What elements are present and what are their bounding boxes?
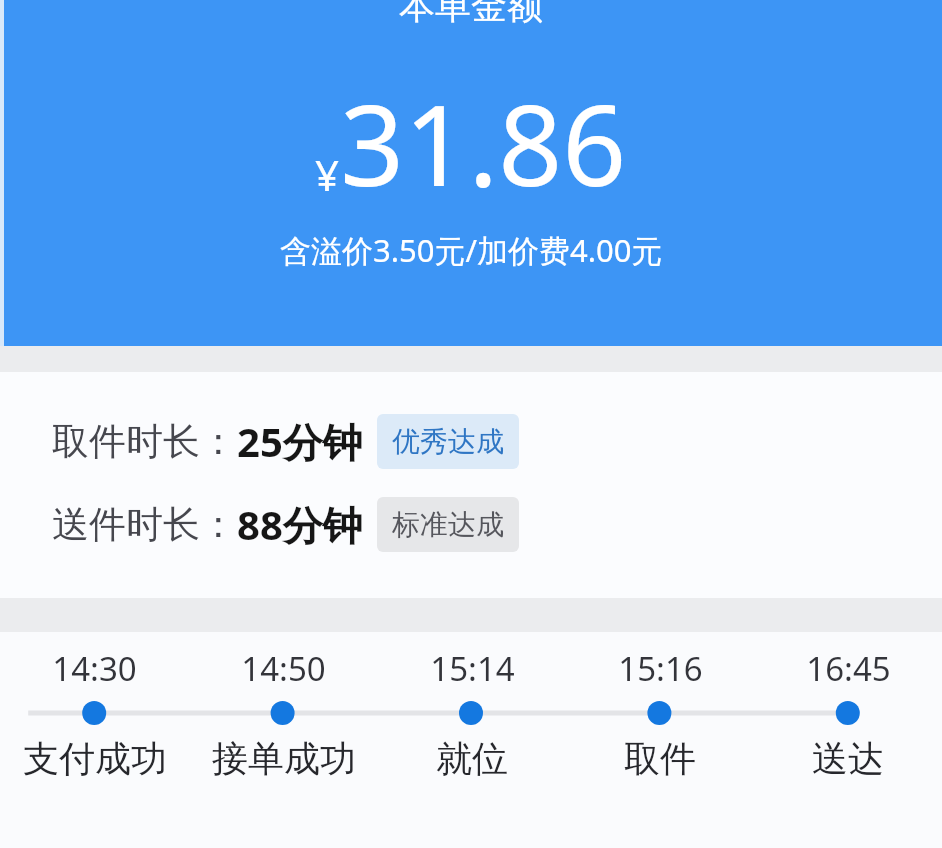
staticText: 25分钟 — [237, 414, 363, 469]
staticText: 14:30 — [52, 646, 137, 691]
staticText: 优秀达成 — [392, 424, 504, 459]
staticText: 88分钟 — [237, 497, 363, 552]
staticText: 含溢价3.50元/加价费4.00元 — [280, 229, 663, 271]
staticText: 就位 — [436, 736, 508, 781]
staticText: 14:50 — [241, 646, 326, 691]
button[interactable]: 接单成功 — [189, 736, 378, 781]
staticText: 送件时长： — [52, 501, 237, 548]
button[interactable]: 支付成功 — [0, 736, 189, 781]
staticText: 送达 — [812, 736, 884, 781]
button[interactable]: 就位 — [378, 736, 566, 781]
button[interactable]: 取件时长： — [0, 414, 942, 469]
staticText: 本单金额 — [399, 0, 543, 28]
button[interactable]: 送达 — [754, 736, 942, 781]
staticText: 标准达成 — [392, 507, 504, 542]
staticText: 15:16 — [618, 646, 703, 691]
staticText: 15:14 — [430, 646, 515, 691]
staticText: 16:45 — [806, 646, 891, 691]
staticText: 支付成功 — [23, 736, 167, 781]
staticText: 31.86 — [340, 66, 627, 219]
staticText: 接单成功 — [212, 736, 356, 781]
button[interactable]: 取件 — [566, 736, 754, 781]
staticText: 取件时长： — [52, 418, 237, 465]
staticText: ¥ — [315, 146, 340, 203]
button[interactable]: 送件时长： — [0, 497, 942, 552]
staticText: 取件 — [624, 736, 696, 781]
